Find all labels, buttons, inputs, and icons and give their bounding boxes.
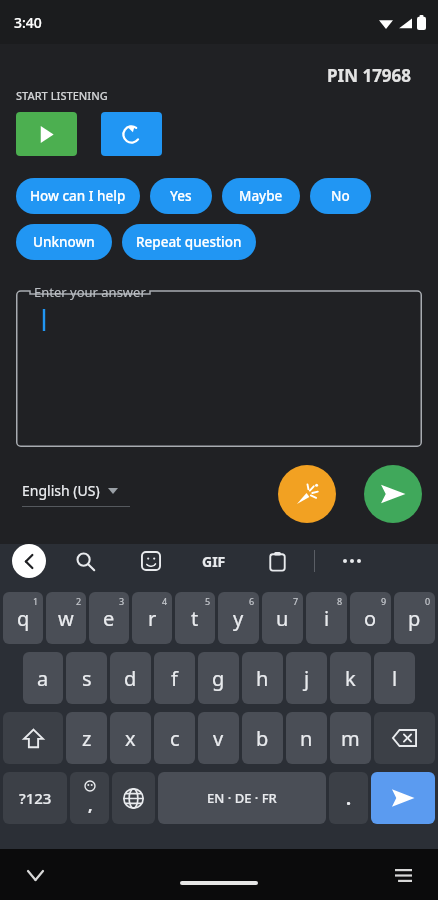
button[interactable]: a — [23, 652, 63, 704]
button[interactable]: Back — [12, 544, 46, 578]
staticText: u — [276, 605, 289, 632]
button[interactable]: m — [330, 712, 371, 764]
button[interactable]: Hide keyboard — [20, 860, 50, 890]
staticText: Enter your answer — [34, 283, 146, 301]
staticText: Repeat question — [136, 233, 242, 251]
staticText: v — [213, 725, 224, 752]
button[interactable]: Emoji and comma — [70, 772, 109, 824]
button[interactable]: s — [66, 652, 107, 704]
staticText: Unknown — [33, 233, 95, 251]
button[interactable]: e — [89, 592, 129, 644]
staticText: 1 — [33, 595, 39, 607]
staticText: x — [125, 725, 136, 752]
button[interactable]: o — [350, 592, 391, 644]
staticText: ?123 — [19, 788, 52, 808]
button[interactable]: Send — [364, 465, 422, 523]
button[interactable]: Repeat question — [122, 224, 256, 260]
staticText: START LISTENING — [16, 88, 108, 103]
button[interactable]: Play — [16, 112, 77, 156]
button[interactable]: x — [110, 712, 151, 764]
button[interactable]: Shift — [3, 712, 63, 764]
button[interactable]: Enter your answer — [16, 282, 422, 447]
button[interactable]: t — [175, 592, 215, 644]
staticText: p — [408, 605, 421, 632]
staticText: n — [300, 725, 313, 752]
button[interactable]: Yes — [150, 178, 212, 214]
staticText: . — [346, 786, 352, 811]
button[interactable]: k — [330, 652, 371, 704]
staticText: 5 — [205, 595, 211, 607]
staticText: o — [364, 605, 377, 632]
staticText: c — [170, 725, 180, 752]
staticText: b — [256, 725, 269, 752]
button[interactable]: Change language — [112, 772, 155, 824]
button[interactable]: Celebrate — [278, 465, 336, 523]
staticText: How can I help — [30, 187, 126, 205]
button[interactable]: How can I help — [16, 178, 140, 214]
staticText: English (US) — [22, 481, 100, 500]
staticText: h — [256, 665, 269, 692]
button[interactable]: More options — [337, 546, 367, 576]
button[interactable]: Unknown — [16, 224, 112, 260]
button[interactable]: q — [3, 592, 43, 644]
staticText: s — [82, 665, 92, 692]
staticText: 3:40 — [14, 13, 42, 32]
button[interactable]: g — [198, 652, 239, 704]
button[interactable]: z — [66, 712, 107, 764]
staticText: 3 — [119, 595, 125, 607]
staticText: f — [171, 665, 178, 692]
staticText: a — [37, 665, 49, 692]
button[interactable]: Search — [70, 546, 100, 576]
button[interactable]: w — [46, 592, 86, 644]
staticText: 0 — [425, 595, 431, 607]
staticText: 6 — [249, 595, 255, 607]
button[interactable]: f — [154, 652, 195, 704]
staticText: q — [17, 605, 30, 632]
button[interactable]: English (US) — [22, 481, 118, 500]
button[interactable]: l — [374, 652, 415, 704]
button[interactable]: Restart — [101, 112, 162, 156]
staticText: k — [345, 665, 356, 692]
staticText: 2 — [76, 595, 82, 607]
button[interactable]: Send — [371, 772, 435, 824]
button[interactable]: Stickers — [136, 546, 166, 576]
button[interactable]: GIF — [202, 552, 226, 571]
button[interactable]: i — [306, 592, 347, 644]
staticText: i — [324, 605, 330, 632]
button[interactable]: b — [242, 712, 283, 764]
button[interactable]: p — [394, 592, 435, 644]
button[interactable]: ?123 — [3, 772, 67, 824]
button[interactable]: Recents — [388, 860, 418, 890]
staticText: j — [304, 665, 310, 692]
staticText: z — [82, 725, 92, 752]
staticText: , — [88, 794, 93, 816]
staticText: 4 — [162, 595, 168, 607]
button[interactable]: c — [154, 712, 195, 764]
staticText: No — [331, 187, 350, 205]
button[interactable]: j — [286, 652, 327, 704]
button[interactable]: h — [242, 652, 283, 704]
button[interactable]: v — [198, 712, 239, 764]
button[interactable]: Maybe — [222, 178, 300, 214]
button[interactable]: d — [110, 652, 151, 704]
button[interactable]: Backspace — [374, 712, 435, 764]
staticText: y — [233, 605, 244, 632]
staticText: PIN 17968 — [327, 64, 412, 87]
staticText: GIF — [202, 552, 226, 571]
button[interactable]: No — [310, 178, 371, 214]
button[interactable]: y — [218, 592, 259, 644]
staticText: r — [148, 605, 157, 632]
staticText: d — [124, 665, 137, 692]
button[interactable]: r — [132, 592, 172, 644]
button[interactable]: Clipboard — [262, 546, 292, 576]
staticText: 8 — [337, 595, 343, 607]
button[interactable]: n — [286, 712, 327, 764]
staticText: 9 — [381, 595, 387, 607]
staticText: m — [341, 725, 360, 752]
staticText: g — [212, 665, 225, 692]
button[interactable]: u — [262, 592, 303, 644]
button[interactable]: EN · DE · FR — [158, 772, 326, 824]
staticText: Yes — [170, 187, 192, 205]
staticText: t — [191, 605, 199, 632]
button[interactable]: . — [329, 772, 368, 824]
